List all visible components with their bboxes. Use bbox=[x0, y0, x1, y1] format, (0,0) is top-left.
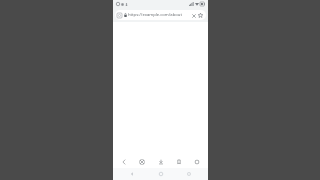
button[interactable]: Back bbox=[117, 156, 131, 168]
button[interactable]: Bookmark bbox=[197, 12, 204, 19]
button[interactable]: Bookmarks bbox=[172, 156, 186, 168]
button[interactable]: Back bbox=[123, 168, 141, 180]
button[interactable]: Tabs bbox=[190, 156, 204, 168]
staticText: https://example.com/about bbox=[128, 12, 189, 18]
button[interactable]: Stop loading bbox=[190, 12, 197, 19]
button[interactable]: Home bbox=[152, 168, 170, 180]
button[interactable]: https://example.com/about bbox=[115, 10, 206, 20]
button[interactable]: Stop bbox=[135, 156, 149, 168]
button[interactable]: Recents bbox=[180, 168, 198, 180]
button[interactable]: Downloads bbox=[154, 156, 168, 168]
